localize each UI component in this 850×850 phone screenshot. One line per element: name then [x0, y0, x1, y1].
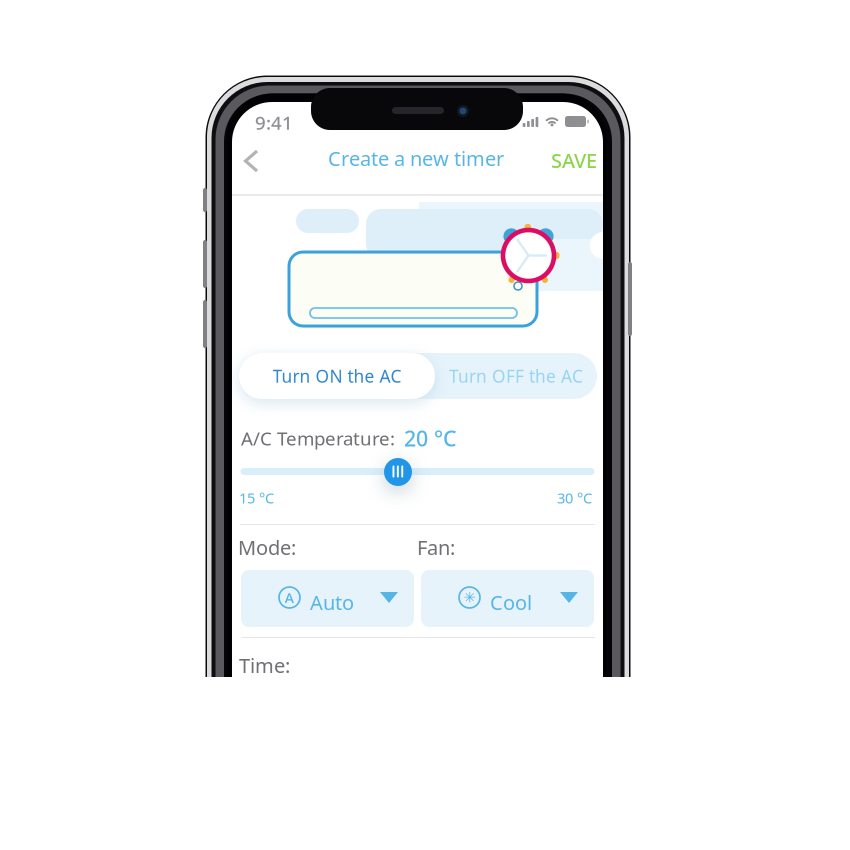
staticText: 9:41 [255, 110, 293, 135]
staticText: SAVE [551, 147, 597, 174]
staticText: Fan: [417, 534, 455, 561]
staticText: Time: [239, 652, 290, 679]
button[interactable]: Turn OFF the AC [435, 353, 597, 399]
staticText: Create a new timer [328, 145, 504, 172]
staticText: 15 °C [239, 488, 274, 507]
button[interactable]: Turn ON the AC [239, 353, 435, 399]
staticText: A [284, 588, 294, 607]
staticText: Turn OFF the AC [449, 364, 583, 387]
staticText: ✳ [463, 589, 475, 606]
staticText: Cool [490, 589, 532, 616]
button[interactable]: SAVE [551, 147, 597, 174]
staticText: A/C Temperature: [241, 426, 395, 451]
button[interactable]: Back [242, 149, 259, 173]
staticText: Mode: [238, 534, 296, 561]
button[interactable]: A [241, 570, 414, 627]
staticText: Turn ON the AC [272, 364, 401, 387]
staticText: 30 °C [557, 488, 592, 507]
staticText: 20 °C [404, 424, 457, 452]
staticText: Auto [310, 589, 354, 616]
button[interactable]: ✳ [421, 570, 594, 627]
